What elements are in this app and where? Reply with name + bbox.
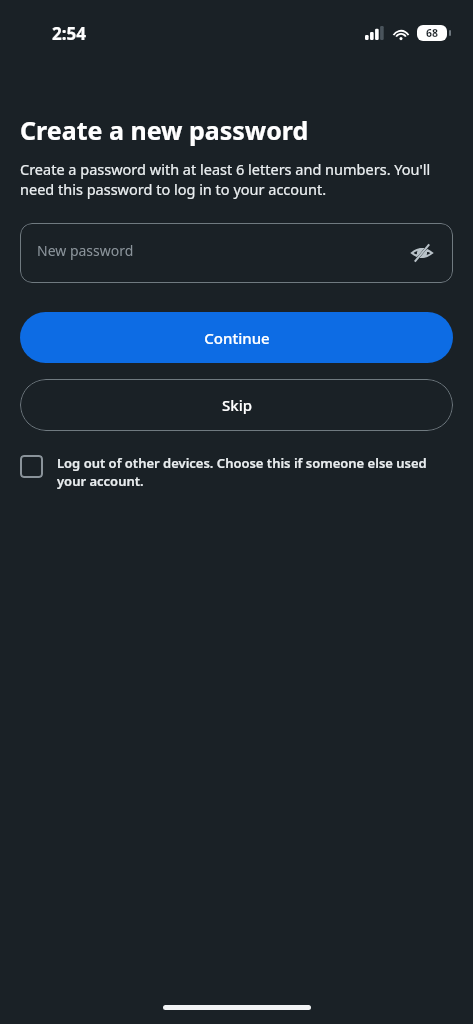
button[interactable]: Log out of other devices. Choose this if… [20,454,453,490]
button[interactable]: New password [20,223,453,283]
staticText: New password [37,241,134,260]
staticText: Log out of other devices. Choose this if… [57,454,453,490]
staticText: 2:54 [52,22,86,45]
button[interactable]: Skip [20,379,453,431]
button[interactable]: Continue [20,312,453,363]
staticText: Continue [204,328,270,348]
staticText: 68 [426,26,439,40]
button[interactable]: Show password [405,236,439,270]
staticText: Create a password with at least 6 letter… [20,159,451,200]
staticText: Skip [222,395,252,415]
staticText: Create a new password [20,113,309,147]
